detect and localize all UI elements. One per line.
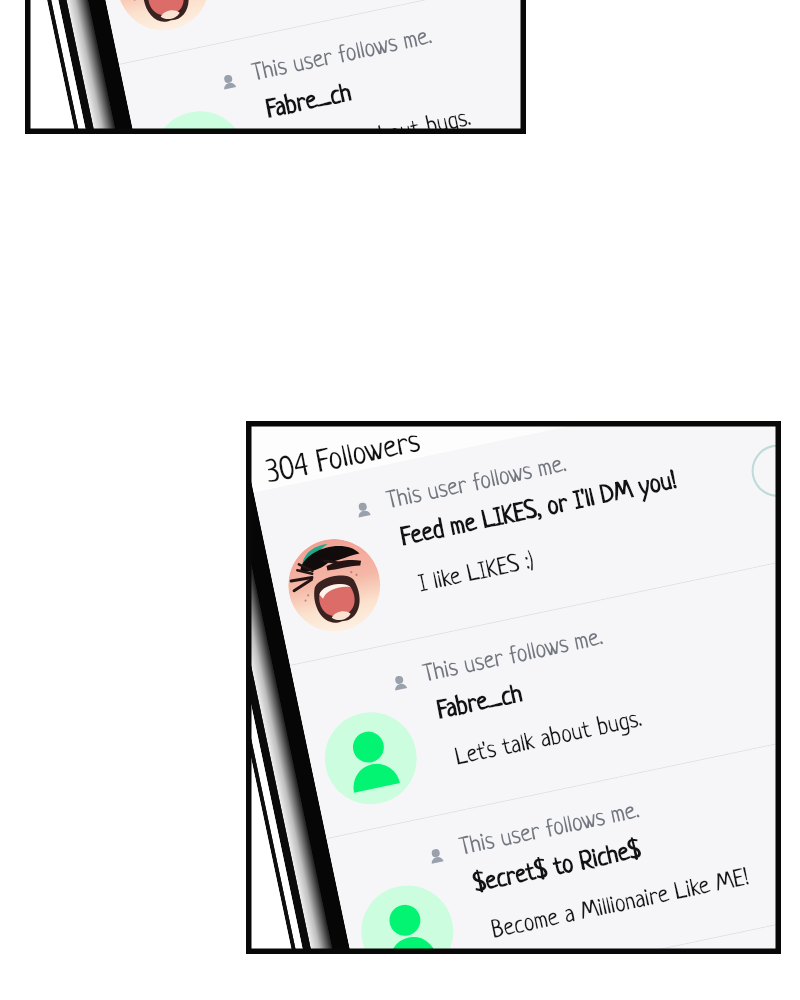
- button[interactable]: This user follows me.: [155, 120, 526, 134]
- staticText: Fabre_ch: [264, 80, 355, 124]
- button[interactable]: This user follows me.: [82, 0, 526, 65]
- staticText: Become a Millionaire Like ME!: [489, 865, 752, 945]
- staticText: Let's talk about bugs.: [453, 707, 644, 771]
- staticText: Fabre_ch: [435, 681, 526, 725]
- button[interactable]: This user follows me.: [253, 421, 781, 666]
- staticText: This user follows me.: [385, 452, 569, 515]
- button[interactable]: This user follows me.: [119, 0, 526, 134]
- staticText: Feed me LIKES, or I'll DM you!: [398, 467, 680, 552]
- staticText: This user follows me.: [250, 24, 435, 87]
- staticText: This user follows me.: [458, 798, 642, 861]
- staticText: This user follows me.: [421, 625, 606, 688]
- staticText: Let's talk about bugs.: [282, 106, 473, 134]
- staticText: I like LIKES :): [416, 549, 536, 598]
- button[interactable]: This user follows me.: [326, 721, 781, 954]
- button[interactable]: Search: [746, 439, 781, 502]
- staticText: 304 Followers: [264, 427, 424, 491]
- staticText: $ecret$ to Riche$: [471, 837, 643, 898]
- button[interactable]: This user follows me.: [290, 547, 781, 839]
- button[interactable]: This user follows me.: [363, 894, 781, 954]
